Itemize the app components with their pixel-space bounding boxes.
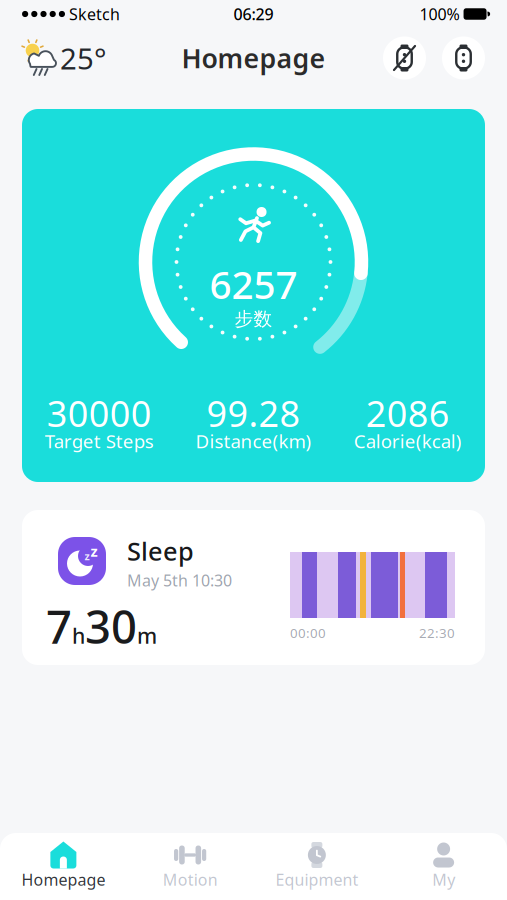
staticText: 100% [419,3,463,25]
staticText: 99.28 [206,389,300,437]
staticText: 06:29 [233,3,273,25]
staticText: 00:00 [290,624,326,642]
button[interactable]: Band connected [442,36,485,79]
staticText: Distance(km) [195,429,311,453]
staticText: 22:30 [419,624,455,642]
button[interactable]: Band disconnected [383,36,426,79]
staticText: 30000 [47,389,152,437]
staticText: 步数 [234,307,272,330]
staticText: Calorie(kcal) [354,429,462,453]
staticText: z [90,541,97,561]
button[interactable]: Sleep details [22,510,485,665]
staticText: Sketch [65,3,120,25]
staticText: Homepage [21,869,105,890]
staticText: My [432,869,455,890]
staticText: May 5th 10:30 [127,570,232,591]
staticText: Homepage [181,40,325,76]
staticText: Sleep [127,534,194,568]
staticText: 6257 [209,258,297,310]
button[interactable]: Homepage [0,833,127,900]
button[interactable]: My [380,833,507,900]
staticText: Target Steps [45,429,154,453]
button[interactable]: Equipment [253,833,380,900]
staticText: Motion [163,869,218,890]
staticText: 25° [60,38,107,77]
staticText: 7h30m [46,596,157,656]
staticText: z [84,549,89,563]
staticText: Equipment [275,869,358,890]
staticText: 2086 [366,389,450,437]
button[interactable]: Motion [127,833,254,900]
